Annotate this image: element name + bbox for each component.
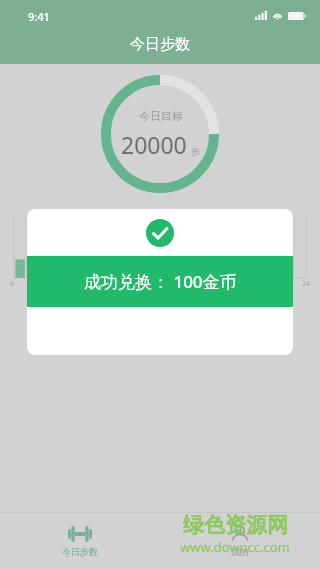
other: 我的 [231,526,249,542]
staticText: 18 [229,279,238,289]
staticText: 24 [302,279,311,289]
staticText: 今日数据 [0,302,320,318]
staticText: www.downcc.com [180,538,290,556]
button[interactable]: 今日步数 [0,513,160,569]
staticText: 9 [120,279,125,289]
staticText: 12 [156,279,165,289]
staticText: 绿色资源网 [183,512,288,538]
staticText: 9:41 [28,9,50,24]
staticText: 6 [83,279,88,289]
staticText: 步 [191,146,200,157]
staticText: 我的 [231,546,249,557]
button[interactable]: 我的 [160,513,320,569]
staticText: 今日步数 [130,35,190,54]
other: 今日步数 [68,526,92,542]
staticText: 20000 [121,129,187,160]
staticText: 今日目标 [139,109,183,123]
staticText: 今日步数 [62,546,98,557]
staticText: 成功兑换： 100金币 [84,270,237,293]
staticText: 15 [193,279,202,289]
staticText: 0 [10,279,15,289]
